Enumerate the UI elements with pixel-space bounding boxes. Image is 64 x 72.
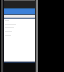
button[interactable] <box>4 35 35 36</box>
button[interactable] <box>4 24 35 25</box>
button[interactable] <box>4 31 35 32</box>
button[interactable] <box>4 27 35 28</box>
button[interactable] <box>4 20 35 21</box>
